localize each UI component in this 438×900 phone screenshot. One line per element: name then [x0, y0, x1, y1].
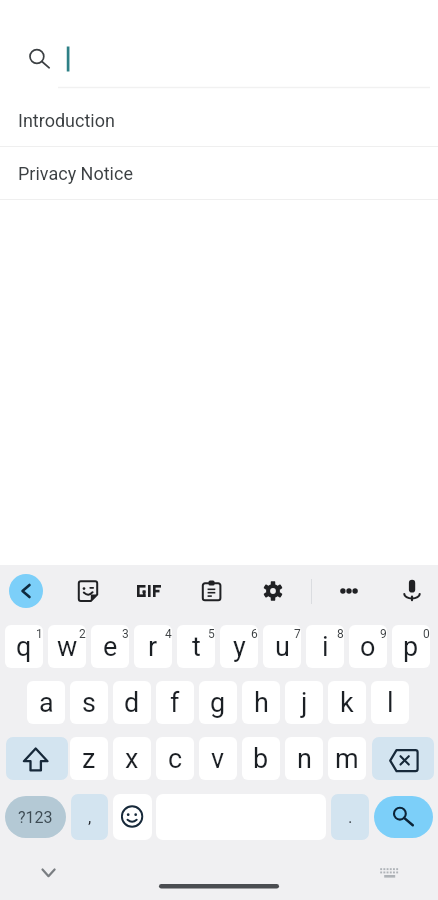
button[interactable]: Hide keyboard — [27, 852, 69, 894]
staticText: n — [297, 743, 312, 775]
button[interactable]: Shift — [6, 737, 68, 780]
button[interactable]: GIF — [130, 571, 170, 611]
staticText: b — [253, 743, 269, 775]
button[interactable]: b — [242, 737, 280, 780]
staticText: s — [82, 687, 96, 719]
button[interactable]: More options — [329, 571, 369, 611]
staticText: 1 — [36, 627, 43, 641]
button[interactable]: o — [349, 625, 387, 668]
button[interactable]: w — [48, 625, 86, 668]
button[interactable]: q — [5, 625, 43, 668]
staticText: k — [340, 687, 354, 719]
button[interactable]: c — [156, 737, 194, 780]
staticText: 7 — [294, 627, 301, 641]
staticText: v — [211, 743, 225, 775]
button[interactable]: p — [392, 625, 430, 668]
staticText: a — [39, 687, 54, 719]
staticText: j — [301, 687, 308, 719]
button[interactable]: Clipboard — [191, 571, 231, 611]
staticText: 9 — [380, 627, 387, 641]
button[interactable]: j — [285, 681, 323, 724]
button[interactable]: Backspace — [372, 737, 434, 780]
staticText: r — [148, 631, 158, 663]
button[interactable]: n — [285, 737, 323, 780]
staticText: Introduction — [18, 110, 115, 131]
staticText: y — [233, 631, 246, 663]
staticText: q — [16, 631, 32, 663]
button[interactable]: g — [199, 681, 237, 724]
button[interactable]: e — [91, 625, 129, 668]
staticText: d — [124, 687, 140, 719]
button[interactable]: k — [328, 681, 366, 724]
staticText: i — [322, 631, 329, 663]
staticText: p — [403, 631, 419, 663]
staticText: x — [125, 743, 139, 775]
staticText: g — [210, 687, 226, 719]
button[interactable]: h — [242, 681, 280, 724]
button[interactable]: Settings — [253, 571, 293, 611]
staticText: w — [57, 631, 78, 663]
staticText: ?123 — [18, 808, 53, 827]
staticText: h — [254, 687, 269, 719]
staticText: u — [275, 631, 290, 663]
staticText: 6 — [251, 627, 258, 641]
staticText: 8 — [337, 627, 344, 641]
staticText: e — [103, 631, 118, 663]
staticText: f — [170, 687, 180, 719]
button[interactable]: t — [177, 625, 215, 668]
staticText: 3 — [122, 627, 129, 641]
staticText: c — [168, 743, 183, 775]
staticText: 2 — [79, 627, 86, 641]
button[interactable]: ?123 — [5, 796, 66, 838]
staticText: 5 — [208, 627, 215, 641]
button[interactable]: z — [70, 737, 108, 780]
staticText: l — [387, 687, 394, 719]
button[interactable]: Back — [9, 574, 43, 608]
button[interactable]: u — [263, 625, 301, 668]
button[interactable]: Stickers — [68, 571, 108, 611]
button[interactable]: Voice input — [392, 571, 432, 611]
staticText: o — [360, 631, 376, 663]
staticText: . — [348, 807, 353, 827]
button[interactable]: l — [371, 681, 409, 724]
button[interactable]: f — [156, 681, 194, 724]
button[interactable]: d — [113, 681, 151, 724]
button[interactable]: a — [27, 681, 65, 724]
button[interactable]: Introduction — [0, 94, 438, 147]
staticText: 0 — [423, 627, 430, 641]
button[interactable]: Emoji — [113, 794, 152, 840]
button[interactable]: y — [220, 625, 258, 668]
staticText: Privacy Notice — [18, 163, 133, 184]
staticText: m — [335, 743, 359, 775]
button[interactable]: x — [113, 737, 151, 780]
button[interactable]: r — [134, 625, 172, 668]
staticText: z — [82, 743, 96, 775]
staticText: , — [88, 807, 92, 827]
staticText: 4 — [165, 627, 172, 641]
button[interactable]: m — [328, 737, 366, 780]
button[interactable]: Switch keyboard — [368, 852, 410, 894]
staticText: t — [192, 631, 201, 663]
button[interactable]: . — [331, 794, 369, 840]
button[interactable]: s — [70, 681, 108, 724]
button[interactable]: v — [199, 737, 237, 780]
button[interactable]: Search — [374, 796, 433, 838]
button[interactable]: Privacy Notice — [0, 147, 438, 200]
button[interactable]: , — [71, 794, 108, 840]
button[interactable]: i — [306, 625, 344, 668]
